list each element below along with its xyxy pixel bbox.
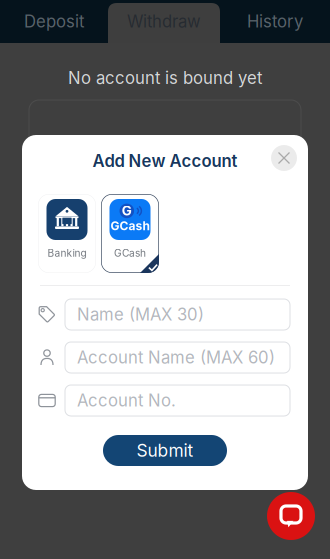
staticText: Banking bbox=[47, 247, 86, 259]
button[interactable]: Deposit bbox=[0, 0, 108, 43]
staticText: No account is bound yet bbox=[68, 68, 262, 88]
staticText: Submit bbox=[136, 440, 193, 461]
button[interactable]: History bbox=[220, 0, 330, 43]
button[interactable]: Submit bbox=[103, 435, 227, 466]
staticText: Account Name (MAX 60) bbox=[77, 347, 275, 368]
button[interactable]: Close bbox=[271, 145, 297, 171]
staticText: GCash bbox=[110, 219, 149, 233]
button[interactable]: G bbox=[101, 194, 159, 273]
staticText: GCash bbox=[114, 247, 146, 259]
staticText: Add New Account bbox=[92, 151, 237, 171]
staticText: Name (MAX 30) bbox=[77, 304, 204, 325]
staticText: History bbox=[247, 11, 303, 32]
button[interactable]: Banking bbox=[38, 194, 96, 273]
staticText: Account No. bbox=[77, 390, 176, 411]
staticText: G bbox=[122, 203, 132, 219]
staticText: Withdraw bbox=[127, 11, 201, 32]
button[interactable]: Chat support bbox=[267, 492, 315, 540]
button[interactable]: Withdraw bbox=[108, 0, 220, 43]
staticText: Deposit bbox=[24, 11, 84, 32]
